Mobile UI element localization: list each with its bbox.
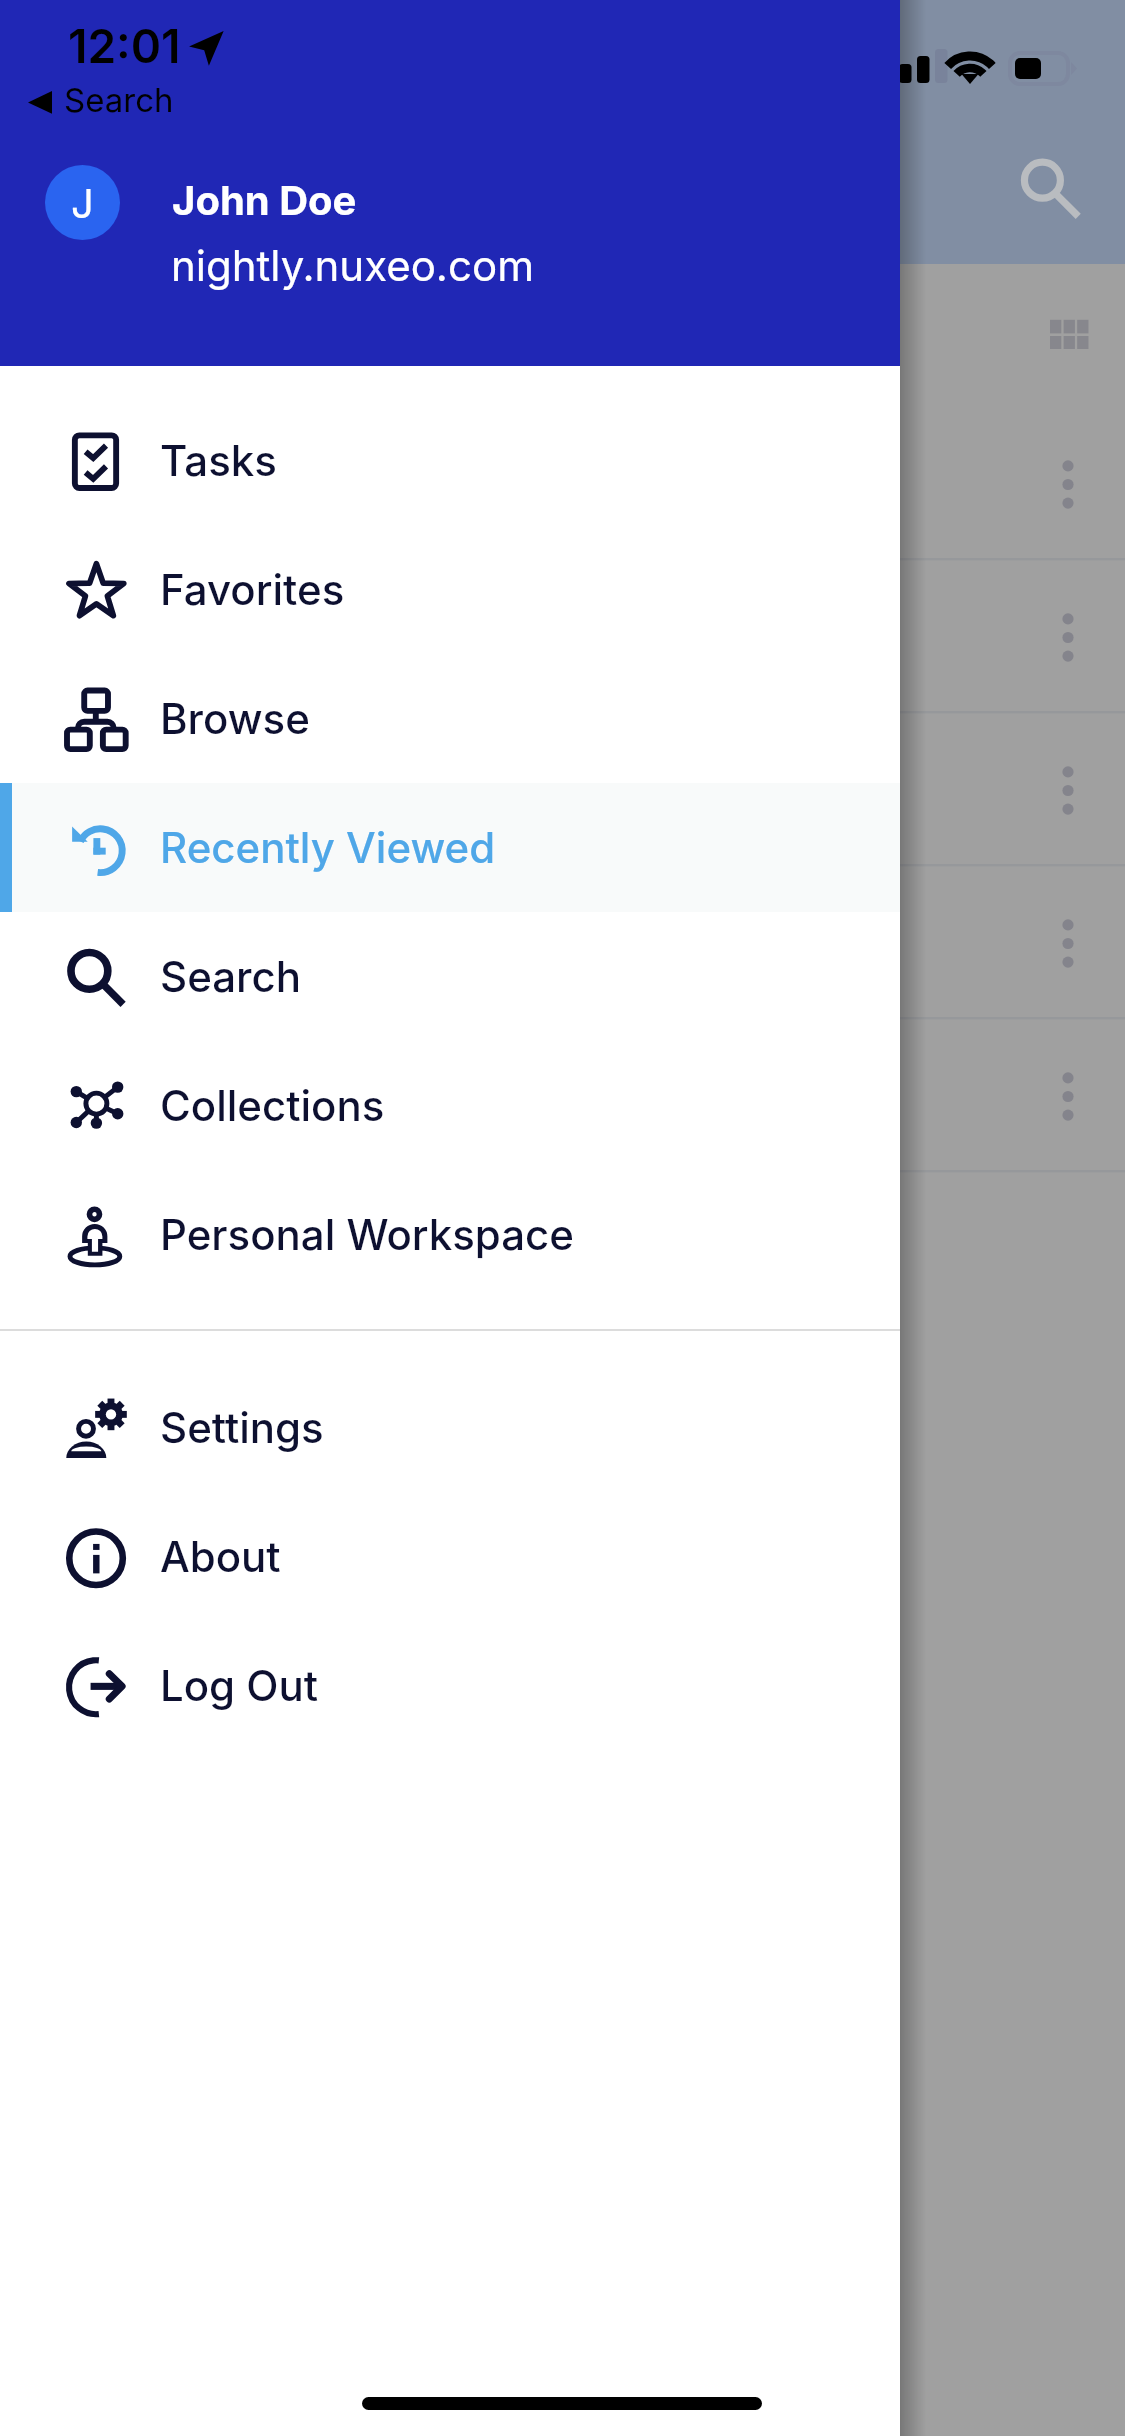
button[interactable]: Personal Workspace <box>0 1170 900 1299</box>
staticText: Favorites <box>160 564 345 615</box>
staticText: Browse <box>160 693 310 744</box>
staticText: nightly.nuxeo.com <box>171 240 534 291</box>
button[interactable]: Settings <box>0 1363 900 1492</box>
staticText: About <box>160 1531 281 1582</box>
staticText: Settings <box>160 1402 324 1453</box>
button[interactable]: About <box>0 1492 900 1621</box>
button[interactable]: Log Out <box>0 1621 900 1750</box>
button[interactable]: Collections <box>0 1041 900 1170</box>
button[interactable]: Search <box>1012 152 1086 226</box>
staticText: Collections <box>160 1080 385 1131</box>
staticText: 12:01 <box>68 18 181 74</box>
staticText: Search <box>160 951 302 1002</box>
button[interactable]: Favorites <box>0 525 900 654</box>
staticText: J <box>71 179 94 227</box>
staticText: Search <box>64 80 174 120</box>
staticText: John Doe <box>172 176 357 224</box>
button[interactable]: Recently Viewed <box>0 783 900 912</box>
button[interactable]: Browse <box>0 654 900 783</box>
staticText: Tasks <box>160 435 277 486</box>
staticText: Recently Viewed <box>160 822 496 873</box>
staticText: Personal Workspace <box>160 1209 574 1260</box>
button[interactable]: Tasks <box>0 396 900 525</box>
staticText: Log Out <box>160 1660 319 1711</box>
button[interactable]: Search <box>0 912 900 1041</box>
